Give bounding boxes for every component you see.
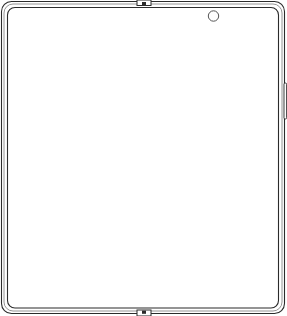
button[interactable]: Foldable phone device outline	[0, 0, 287, 316]
